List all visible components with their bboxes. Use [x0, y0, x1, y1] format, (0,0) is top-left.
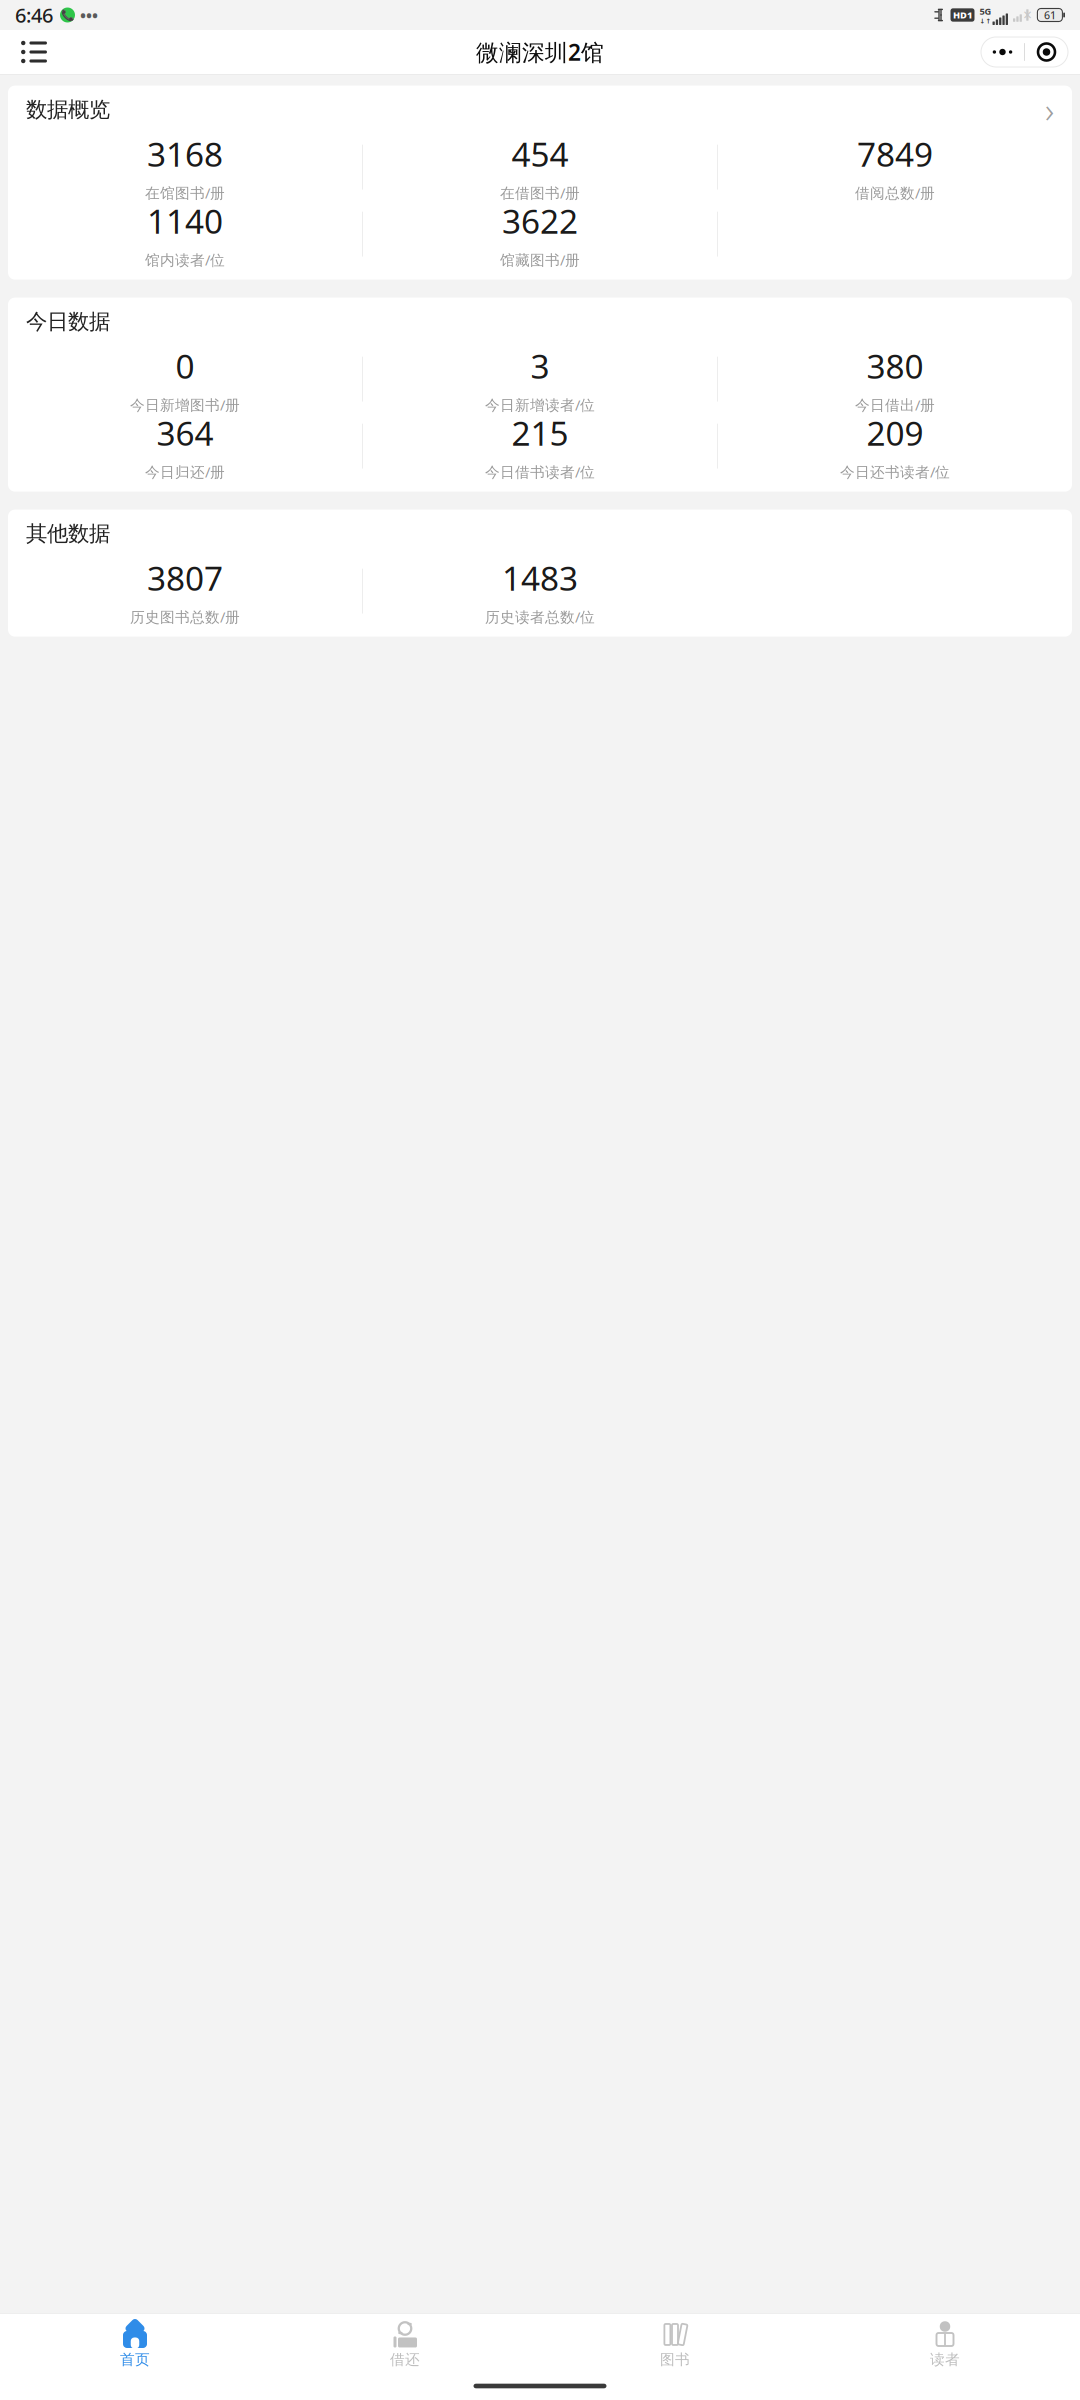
staticText: 馆内读者/位 [145, 250, 225, 269]
staticText: 今日还书读者/位 [840, 462, 950, 481]
staticText: 7849 [857, 132, 933, 176]
staticText: 今日借书读者/位 [485, 462, 595, 481]
staticText: ↓↑ [979, 17, 991, 25]
staticText: 6:46 [15, 2, 53, 28]
button[interactable]: 借还 [270, 2319, 540, 2371]
staticText: 61 [1044, 8, 1056, 22]
staticText: 数据概览 [26, 96, 110, 123]
button[interactable]: 更多与胶囊菜单 [981, 37, 1068, 67]
staticText: 首页 [120, 2350, 150, 2368]
staticText: 今日归还/册 [145, 462, 225, 481]
button[interactable]: 数据概览 [8, 86, 1072, 134]
staticText: 364 [156, 411, 213, 455]
staticText: 0 [175, 344, 194, 388]
staticText: 📞 [61, 9, 74, 21]
staticText: 在馆图书/册 [145, 183, 225, 202]
staticText: 215 [511, 411, 568, 455]
staticText: 历史图书总数/册 [130, 607, 240, 626]
staticText: 微澜深圳2馆 [476, 37, 604, 67]
staticText: 3 [530, 344, 549, 388]
staticText: 历史读者总数/位 [485, 607, 595, 626]
staticText: 读者 [930, 2350, 960, 2368]
staticText: 1140 [147, 199, 223, 243]
staticText: 3168 [147, 132, 223, 176]
staticText: 今日数据 [26, 308, 110, 335]
staticText: 其他数据 [26, 520, 110, 547]
staticText: 380 [866, 344, 923, 388]
staticText: 今日借出/册 [855, 395, 935, 414]
staticText: HD1 [953, 9, 972, 21]
staticText: 图书 [660, 2350, 690, 2368]
staticText: 借阅总数/册 [855, 183, 935, 202]
staticText: ✕ [1022, 8, 1032, 22]
staticText: 今日新增读者/位 [485, 395, 595, 414]
button[interactable]: 菜单 [12, 32, 56, 72]
staticText: 1483 [502, 556, 578, 600]
staticText: 今日新增图书/册 [130, 395, 240, 414]
button[interactable]: 读者 [810, 2319, 1080, 2371]
staticText: 454 [511, 132, 568, 176]
button[interactable]: 图书 [540, 2319, 810, 2371]
staticText: 在借图书/册 [500, 183, 580, 202]
staticText: 5G [979, 5, 991, 17]
staticText: › [1045, 87, 1054, 133]
staticText: ••• [80, 4, 98, 26]
staticText: 209 [866, 411, 923, 455]
staticText: 3807 [147, 556, 223, 600]
staticText: 借还 [390, 2350, 420, 2368]
staticText: 馆藏图书/册 [500, 250, 580, 269]
staticText: 3622 [502, 199, 578, 243]
button[interactable]: 首页 [0, 2319, 270, 2371]
